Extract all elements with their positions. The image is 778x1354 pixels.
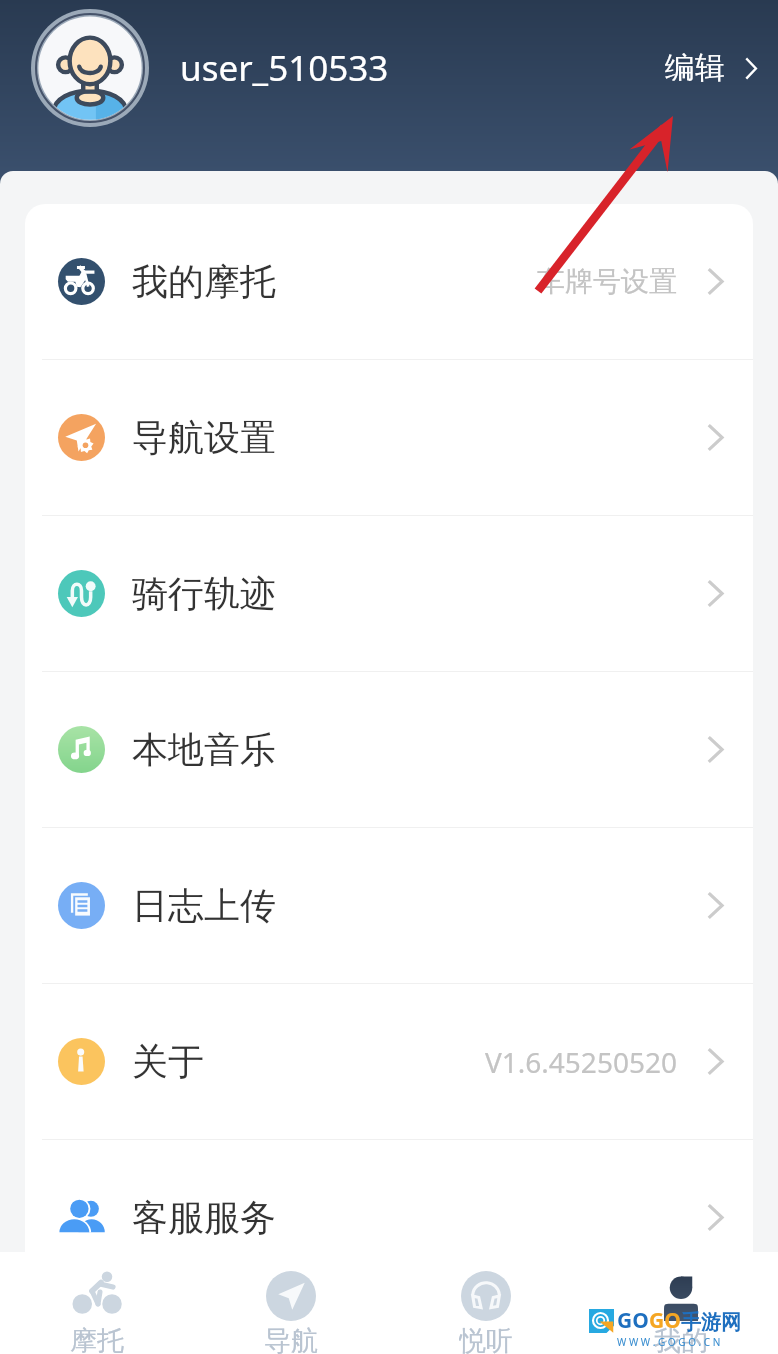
button[interactable]: 关于 [25, 984, 753, 1139]
staticText: 日志上传 [132, 883, 276, 928]
staticText: 我的 [654, 1324, 708, 1354]
button[interactable]: 客服服务 [25, 1140, 753, 1252]
staticText: 车牌号设置 [537, 264, 677, 299]
staticText: 摩托 [70, 1324, 124, 1354]
button[interactable]: 编辑 [657, 39, 765, 97]
staticText: user_510533 [180, 44, 389, 92]
button[interactable]: 摩托 [0, 1252, 194, 1354]
staticText: 骑行轨迹 [132, 571, 276, 616]
button[interactable]: Profile photo [31, 9, 149, 127]
staticText: 手游网 [681, 1310, 741, 1335]
staticText: 本地音乐 [132, 727, 276, 772]
button[interactable]: 导航设置 [25, 360, 753, 515]
staticText: 客服服务 [132, 1195, 276, 1240]
button[interactable]: 本地音乐 [25, 672, 753, 827]
staticText: 导航 [264, 1324, 318, 1354]
staticText: 悦听 [459, 1324, 513, 1354]
staticText: V1.6.45250520 [485, 1043, 677, 1081]
button[interactable]: 骑行轨迹 [25, 516, 753, 671]
staticText: GO [649, 1306, 681, 1335]
staticText: W W W . G O G O . C N [617, 1335, 721, 1349]
staticText: 我的摩托 [132, 259, 276, 304]
staticText: 编辑 [665, 49, 725, 87]
button[interactable]: 悦听 [388, 1252, 583, 1354]
staticText: 关于 [132, 1039, 204, 1084]
button[interactable]: 我的 [583, 1252, 778, 1354]
button[interactable]: 导航 [194, 1252, 388, 1354]
staticText: GO [617, 1306, 649, 1335]
button[interactable]: 日志上传 [25, 828, 753, 983]
button[interactable]: 我的摩托 [25, 204, 753, 359]
staticText: 导航设置 [132, 415, 276, 460]
